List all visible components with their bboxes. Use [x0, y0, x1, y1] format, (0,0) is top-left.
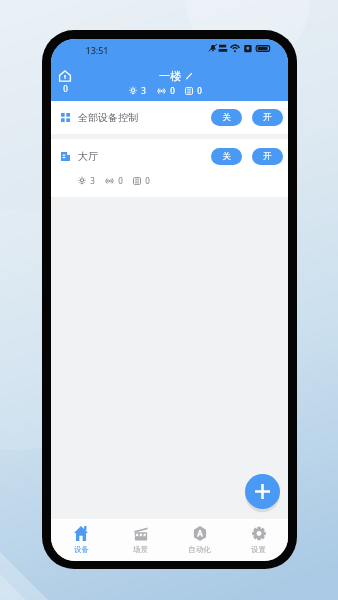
button[interactable]: 关	[211, 109, 242, 126]
button[interactable]: 设置	[229, 519, 288, 561]
staticText: 场景	[133, 545, 148, 554]
button[interactable]: 设备	[51, 519, 111, 561]
other: Edit name	[185, 72, 193, 80]
button[interactable]: 场景	[111, 519, 170, 561]
staticText: 3	[141, 85, 146, 96]
staticText: 全部设备控制	[78, 111, 138, 124]
button[interactable]: Add device	[245, 474, 280, 509]
staticText: 13:51	[85, 44, 109, 56]
staticText: 大厅	[78, 150, 98, 163]
button[interactable]: 自动化	[170, 519, 229, 561]
button[interactable]: 开	[252, 148, 283, 165]
button[interactable]: Home	[56, 70, 74, 94]
button[interactable]: 关	[211, 148, 242, 165]
staticText: 3	[90, 175, 95, 186]
staticText: 设置	[251, 545, 266, 554]
button[interactable]: 开	[252, 109, 283, 126]
staticText: 关	[222, 151, 231, 162]
staticText: 0	[145, 175, 150, 186]
staticText: 一楼	[159, 69, 181, 83]
staticText: 0	[197, 85, 202, 96]
staticText: 0	[63, 83, 68, 94]
staticText: 0	[118, 175, 123, 186]
staticText: 关	[222, 112, 231, 123]
staticText: 开	[263, 112, 272, 123]
staticText: 0	[170, 85, 175, 96]
button[interactable]: 一楼	[159, 69, 193, 83]
button[interactable]: 大厅	[61, 139, 283, 173]
staticText: 自动化	[188, 545, 211, 554]
staticText: 设备	[74, 545, 89, 554]
button[interactable]: 全部设备控制	[61, 101, 283, 134]
staticText: 开	[263, 151, 272, 162]
